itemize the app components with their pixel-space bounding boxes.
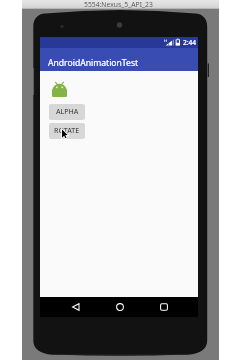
staticText: 2:44 [183,38,197,47]
button[interactable]: Recents [154,297,174,317]
button[interactable]: Back [66,297,86,317]
staticText: AndroidAnimationTest [48,57,139,69]
button[interactable]: Home [110,297,130,317]
button[interactable]: ALPHA [49,104,85,120]
staticText: ROTATE [54,126,80,136]
staticText: ALPHA [56,107,79,117]
button[interactable]: ROTATE [49,123,85,139]
staticText: 5554:Nexus_5_API_23 [84,0,153,9]
